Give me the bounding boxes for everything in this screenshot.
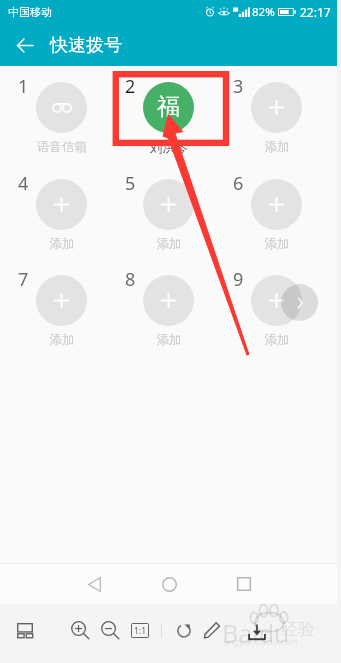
staticText: 1 [18, 74, 29, 99]
staticText: Baidu [222, 616, 290, 650]
staticText: 1:1 [134, 625, 147, 637]
staticText: 6 [233, 171, 244, 196]
staticText: 添加 [224, 236, 330, 252]
staticText: 添加 [9, 332, 115, 348]
staticText: 5 [125, 171, 136, 196]
button[interactable]: 缩小 [97, 617, 123, 643]
staticText: 9 [233, 267, 244, 292]
staticText: 添加 [116, 236, 222, 252]
button[interactable]: 返回 [74, 564, 114, 604]
staticText: 4 [18, 171, 29, 196]
button[interactable]: 7 [8, 274, 114, 350]
button[interactable]: 重做 [171, 617, 197, 643]
staticText: 8 [125, 267, 136, 292]
button[interactable]: 2 [115, 81, 221, 157]
staticText: 添加 [116, 332, 222, 348]
button[interactable]: 3 [223, 81, 329, 157]
button[interactable]: 下载 [244, 619, 270, 645]
staticText: 3 [233, 74, 244, 99]
button[interactable]: 6 [223, 178, 329, 254]
staticText: 经验 [281, 619, 315, 640]
button[interactable]: 放大 [67, 617, 93, 643]
button[interactable]: 下一页 [281, 284, 318, 321]
staticText: 添加 [224, 332, 330, 348]
button[interactable]: 5 [115, 178, 221, 254]
staticText: 添加 [224, 139, 330, 155]
staticText: 福 [157, 92, 180, 121]
staticText: 刘洪琴 [116, 139, 222, 155]
button[interactable]: 返回 [4, 24, 46, 66]
staticText: 快速拨号 [50, 34, 122, 57]
staticText: 82% [252, 4, 275, 20]
button[interactable]: 9 [223, 274, 329, 350]
staticText: Jingyan.baidu.com [224, 636, 298, 648]
staticText: 2 [125, 74, 136, 99]
staticText: 22:17 [300, 4, 331, 20]
button[interactable]: 原始大小 [127, 617, 153, 643]
button[interactable]: 最近任务 [224, 564, 264, 604]
staticText: 中国移动 [8, 5, 52, 19]
button[interactable]: 布局 [12, 617, 38, 643]
staticText: 语音信箱 [9, 139, 115, 155]
button[interactable]: 编辑 [199, 617, 225, 643]
staticText: 7 [18, 267, 29, 292]
button[interactable]: 主页 [149, 564, 189, 604]
staticText: 添加 [9, 236, 115, 252]
button[interactable]: 4 [8, 178, 114, 254]
button[interactable]: 8 [115, 274, 221, 350]
button[interactable]: 1 [8, 81, 114, 157]
